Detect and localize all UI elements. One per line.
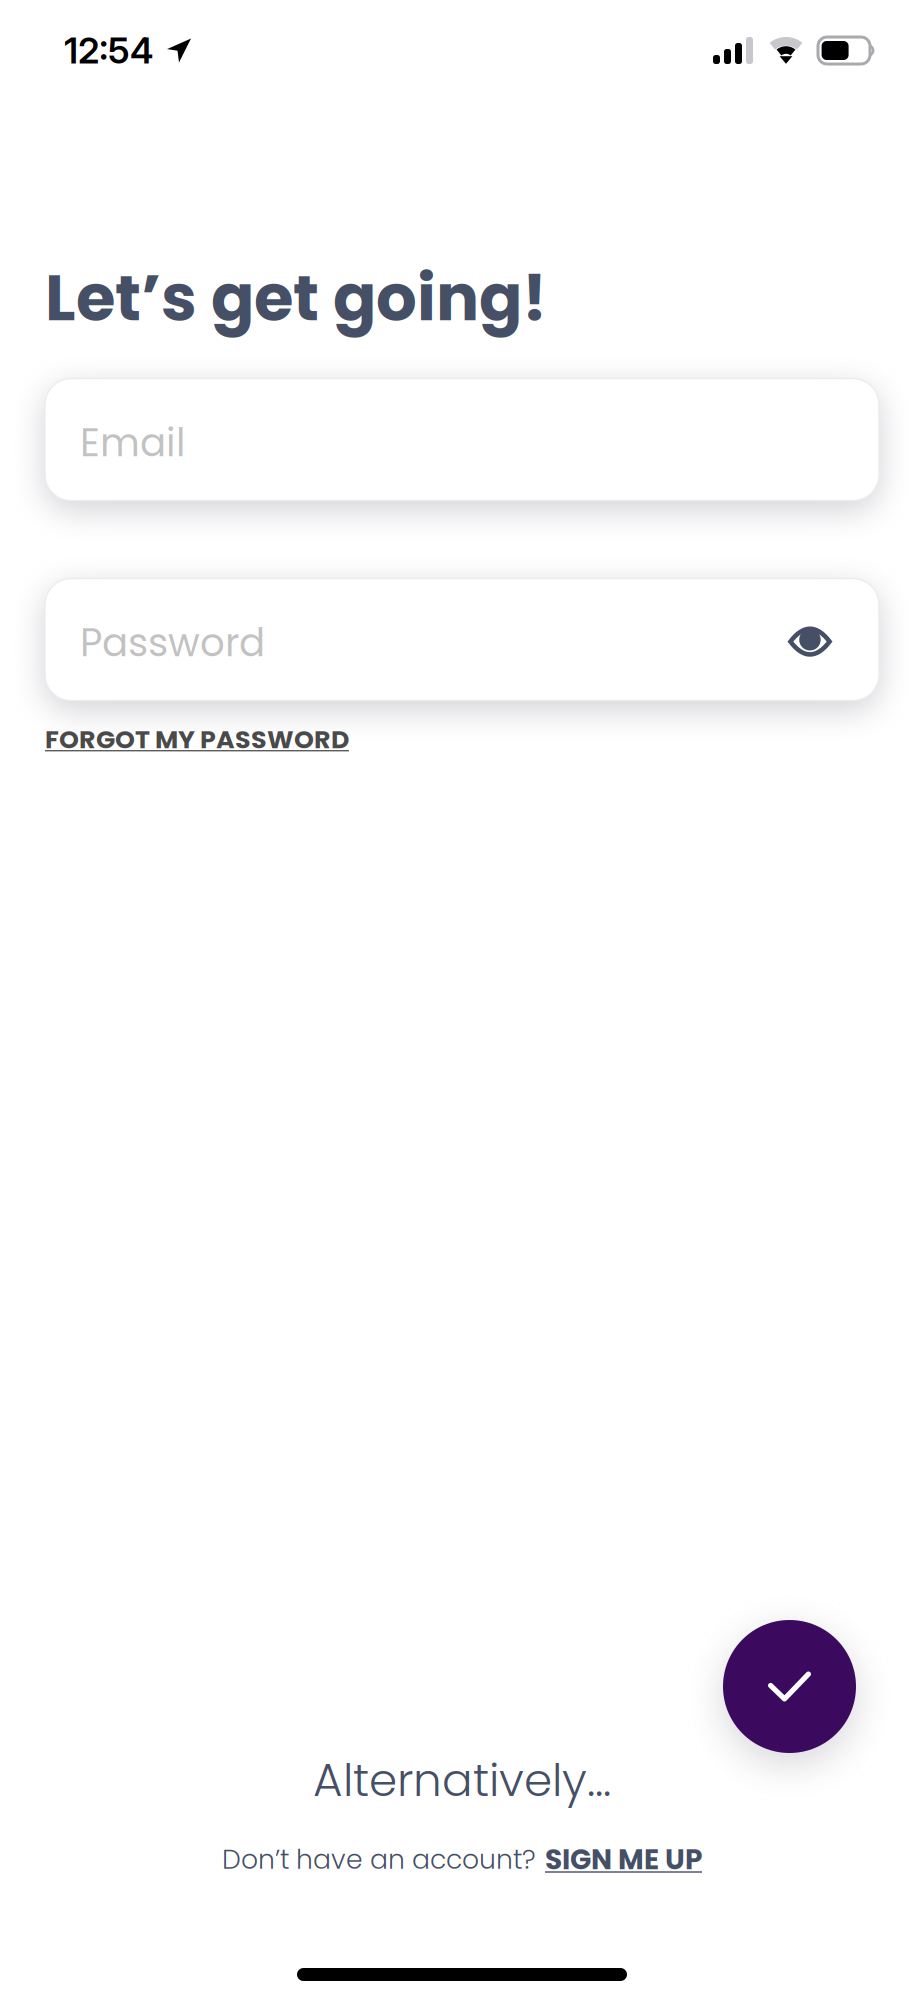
staticText: FORGOT MY PASSWORD — [45, 722, 349, 757]
staticText: Let’s get going! — [45, 253, 547, 343]
staticText: Alternatively... — [313, 1748, 611, 1812]
staticText: Don’t have an account? — [222, 1841, 536, 1878]
button[interactable]: Continue — [723, 1620, 856, 1753]
staticText: SIGN ME UP — [545, 1840, 702, 1879]
button[interactable]: Show password — [776, 597, 855, 682]
button[interactable]: FORGOT MY PASSWORD — [45, 713, 359, 766]
staticText: Email — [80, 415, 186, 470]
button[interactable]: SIGN ME UP — [545, 1840, 702, 1879]
staticText: 12:54 — [64, 29, 153, 72]
staticText: Password — [80, 615, 265, 670]
